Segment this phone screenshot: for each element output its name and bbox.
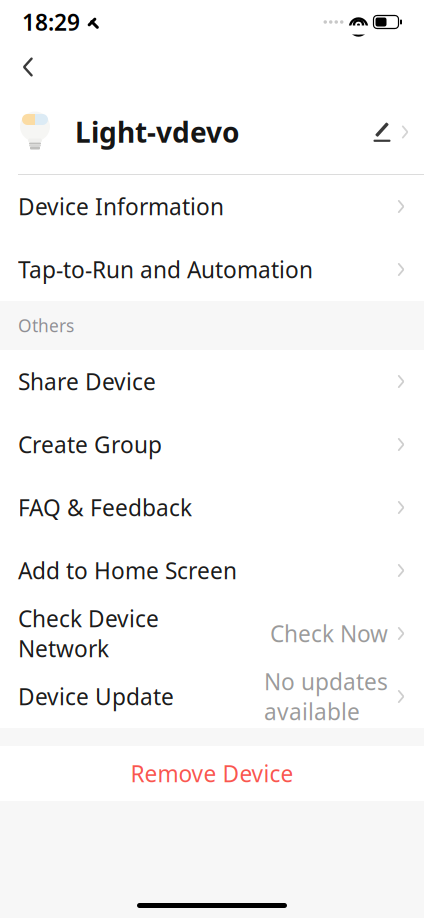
button[interactable]: Check Device Network <box>0 602 424 665</box>
staticText: 18:29 <box>22 7 80 37</box>
button[interactable]: Add to Home Screen <box>0 539 424 602</box>
staticText: Remove Device <box>130 758 293 788</box>
staticText: No updates available <box>264 666 388 727</box>
staticText: Create Group <box>18 429 162 459</box>
button[interactable]: FAQ & Feedback <box>0 476 424 539</box>
button[interactable]: Device Update <box>0 665 424 728</box>
button[interactable]: Back <box>6 45 50 89</box>
button[interactable]: Tap-to-Run and Automation <box>0 238 424 301</box>
staticText: Others <box>18 314 74 337</box>
staticText: Add to Home Screen <box>18 555 237 585</box>
staticText: Check Now <box>270 618 388 648</box>
button[interactable]: Remove Device <box>0 746 424 801</box>
button[interactable]: Share Device <box>0 350 424 413</box>
staticText: Light-vdevo <box>75 113 240 151</box>
staticText: Tap-to-Run and Automation <box>18 254 313 284</box>
button[interactable]: Create Group <box>0 413 424 476</box>
staticText: Share Device <box>18 366 156 396</box>
staticText: Device Update <box>18 681 174 711</box>
button[interactable]: Light-vdevo <box>0 90 424 174</box>
staticText: Device Information <box>18 191 224 221</box>
staticText: FAQ & Feedback <box>18 492 192 522</box>
staticText: Check Device Network <box>18 603 159 664</box>
button[interactable]: Device Information <box>0 175 424 238</box>
